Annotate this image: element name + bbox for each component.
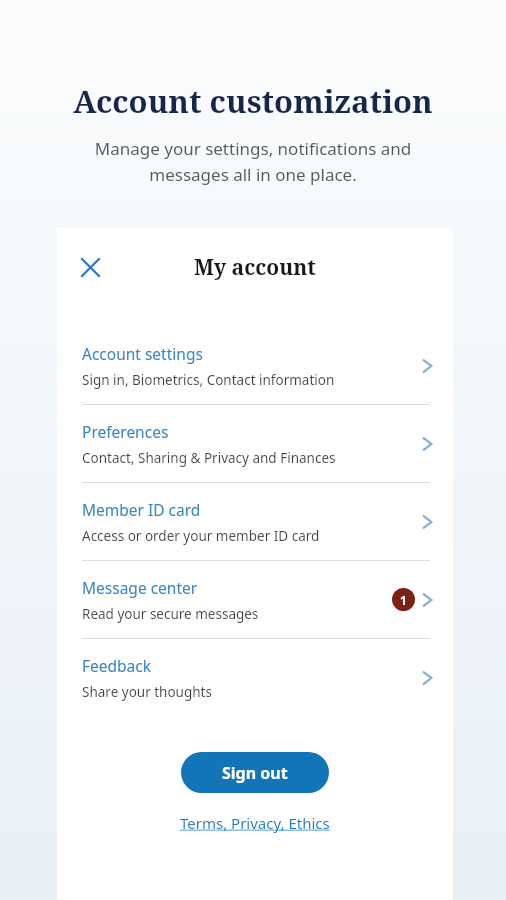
button[interactable]: Preferences bbox=[57, 405, 453, 482]
staticText: Contact, Sharing & Privacy and Finances bbox=[82, 449, 336, 467]
staticText: Account settings bbox=[82, 343, 203, 364]
button[interactable]: Close bbox=[70, 247, 110, 287]
staticText: Feedback bbox=[82, 655, 152, 676]
button[interactable]: Feedback bbox=[57, 639, 453, 716]
staticText: Share your thoughts bbox=[82, 683, 212, 701]
staticText: Access or order your member ID card bbox=[82, 527, 320, 545]
staticText: My account bbox=[194, 253, 316, 282]
button[interactable]: Terms, Privacy, Ethics bbox=[174, 810, 336, 836]
staticText: Sign in, Biometrics, Contact information bbox=[82, 371, 335, 389]
button[interactable]: Account settings bbox=[57, 327, 453, 404]
staticText: Read your secure messages bbox=[82, 605, 259, 623]
staticText: Message center bbox=[82, 577, 198, 598]
button[interactable]: Message center bbox=[57, 561, 453, 638]
staticText: Terms, Privacy, Ethics bbox=[180, 813, 330, 833]
staticText: Sign out bbox=[222, 762, 288, 784]
staticText: Account customization bbox=[0, 80, 506, 122]
staticText: 1 bbox=[400, 592, 407, 608]
staticText: Preferences bbox=[82, 421, 169, 442]
button[interactable]: Sign out bbox=[181, 752, 329, 793]
staticText: Member ID card bbox=[82, 499, 201, 520]
button[interactable]: Member ID card bbox=[57, 483, 453, 560]
staticText: Manage your settings, notifications and … bbox=[40, 137, 466, 186]
